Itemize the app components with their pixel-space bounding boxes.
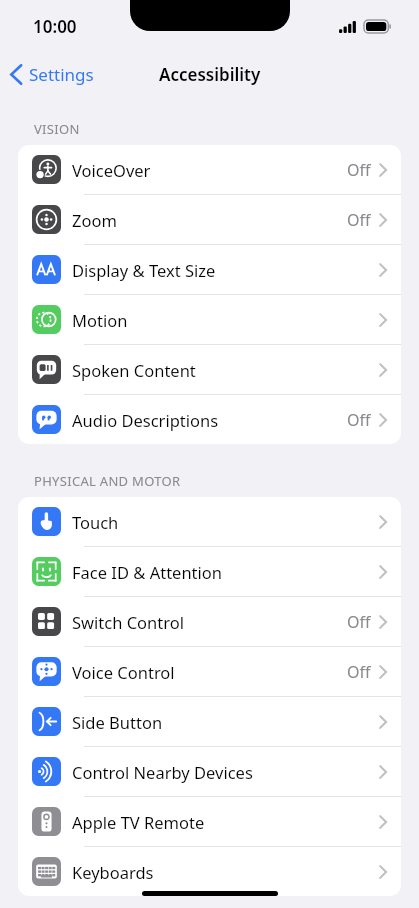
staticText: Display & Text Size [72, 259, 216, 281]
button[interactable]: Settings [0, 63, 102, 86]
button[interactable]: Audio Descriptions [18, 395, 401, 444]
staticText: Switch Control [72, 611, 184, 633]
button[interactable]: Display & Text Size [18, 245, 401, 294]
button[interactable]: Control Nearby Devices [18, 747, 401, 796]
button[interactable]: Zoom [18, 195, 401, 244]
staticText: VISION [34, 120, 80, 138]
button[interactable]: VoiceOver [18, 145, 401, 194]
staticText: Off [347, 409, 371, 431]
staticText: PHYSICAL AND MOTOR [34, 472, 181, 490]
button[interactable]: Side Button [18, 697, 401, 746]
staticText: Settings [29, 63, 94, 86]
staticText: VoiceOver [72, 159, 151, 181]
staticText: Off [347, 209, 371, 231]
button[interactable]: Apple TV Remote [18, 797, 401, 846]
staticText: Apple TV Remote [72, 811, 205, 833]
staticText: Spoken Content [72, 359, 196, 381]
staticText: Off [347, 159, 371, 181]
button[interactable]: Face ID & Attention [18, 547, 401, 596]
button[interactable]: Touch [18, 497, 401, 546]
staticText: Off [347, 661, 371, 683]
staticText: Keyboards [72, 861, 154, 883]
staticText: Zoom [72, 209, 117, 231]
staticText: Side Button [72, 711, 163, 733]
staticText: Voice Control [72, 661, 175, 683]
button[interactable]: Voice Control [18, 647, 401, 696]
staticText: Motion [72, 309, 128, 331]
button[interactable]: Keyboards [18, 847, 401, 896]
staticText: Accessibility [159, 63, 261, 86]
button[interactable]: Switch Control [18, 597, 401, 646]
staticText: Audio Descriptions [72, 409, 219, 431]
staticText: Off [347, 611, 371, 633]
button[interactable]: Motion [18, 295, 401, 344]
staticText: 10:00 [33, 15, 77, 38]
staticText: Touch [72, 511, 119, 533]
button[interactable]: Spoken Content [18, 345, 401, 394]
staticText: Control Nearby Devices [72, 761, 253, 783]
staticText: Face ID & Attention [72, 561, 222, 583]
